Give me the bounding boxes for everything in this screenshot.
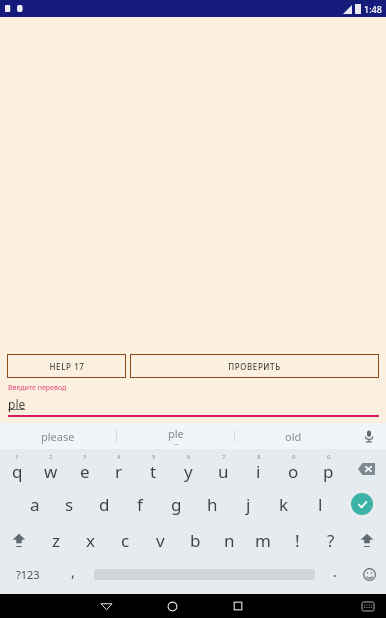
button[interactable]: 6: [171, 452, 206, 486]
button[interactable]: Emoji: [352, 558, 386, 590]
staticText: 0: [327, 453, 331, 461]
staticText: r: [115, 460, 123, 483]
button[interactable]: 9: [276, 452, 311, 486]
button[interactable]: ПРОВЕРИТЬ: [130, 354, 379, 378]
staticText: b: [190, 529, 201, 552]
button[interactable]: 4: [102, 452, 136, 486]
button[interactable]: .: [318, 558, 352, 590]
staticText: 6: [187, 453, 191, 461]
staticText: p: [323, 460, 334, 483]
button[interactable]: g: [158, 486, 194, 522]
staticText: j: [246, 493, 251, 516]
staticText: ple: [168, 426, 184, 441]
staticText: o: [288, 460, 299, 483]
staticText: 7: [222, 453, 226, 461]
button[interactable]: Home: [139, 594, 205, 618]
staticText: c: [121, 529, 130, 552]
button[interactable]: Back: [73, 594, 139, 618]
button[interactable]: ?123: [0, 558, 56, 590]
staticText: m: [255, 529, 271, 552]
button[interactable]: 3: [68, 452, 102, 486]
staticText: x: [86, 529, 95, 552]
button[interactable]: Voice input: [352, 423, 386, 449]
button[interactable]: n: [212, 522, 246, 558]
staticText: v: [156, 529, 165, 552]
button[interactable]: Shift: [348, 522, 386, 558]
staticText: e: [80, 460, 90, 483]
button[interactable]: !: [280, 522, 314, 558]
button[interactable]: ?: [314, 522, 348, 558]
button[interactable]: Switch keyboard: [350, 594, 386, 618]
staticText: 3: [83, 453, 87, 461]
button[interactable]: j: [230, 486, 266, 522]
staticText: k: [279, 493, 289, 516]
staticText: ple: [8, 396, 26, 412]
staticText: please: [41, 429, 75, 444]
button[interactable]: please: [0, 423, 116, 449]
staticText: 2: [49, 453, 53, 461]
staticText: 8: [257, 453, 261, 461]
staticText: 4: [117, 453, 121, 461]
staticText: •••: [174, 442, 179, 447]
staticText: HELP 17: [49, 361, 85, 372]
staticText: 1: [15, 453, 19, 461]
button[interactable]: 1: [0, 452, 34, 486]
button[interactable]: Space: [90, 558, 318, 590]
staticText: s: [65, 493, 74, 516]
button[interactable]: Backspace: [346, 452, 386, 486]
staticText: ,: [71, 562, 75, 581]
button[interactable]: HELP 17: [7, 354, 126, 378]
staticText: w: [44, 460, 58, 483]
button[interactable]: l: [302, 486, 338, 522]
staticText: Введите перевод: [8, 383, 67, 393]
staticText: .: [333, 562, 337, 581]
staticText: y: [184, 460, 193, 483]
button[interactable]: b: [178, 522, 212, 558]
button[interactable]: old: [235, 423, 352, 449]
staticText: old: [285, 429, 302, 444]
staticText: i: [256, 460, 261, 483]
staticText: h: [207, 493, 218, 516]
staticText: g: [171, 493, 182, 516]
button[interactable]: 0: [311, 452, 346, 486]
staticText: 5: [152, 453, 156, 461]
button[interactable]: v: [143, 522, 178, 558]
button[interactable]: k: [266, 486, 302, 522]
button[interactable]: Enter: [338, 486, 386, 522]
staticText: ПРОВЕРИТЬ: [228, 361, 281, 372]
button[interactable]: Recents: [205, 594, 271, 618]
button[interactable]: x: [73, 522, 108, 558]
staticText: ?: [327, 529, 335, 552]
staticText: !: [295, 529, 300, 552]
button[interactable]: 5: [136, 452, 171, 486]
staticText: q: [12, 460, 23, 483]
staticText: ?123: [16, 567, 40, 582]
staticText: z: [52, 529, 60, 552]
staticText: u: [218, 460, 229, 483]
button[interactable]: 8: [241, 452, 276, 486]
button[interactable]: a: [17, 486, 52, 522]
staticText: 1:48: [364, 3, 382, 15]
button[interactable]: f: [122, 486, 158, 522]
staticText: 9: [292, 453, 296, 461]
staticText: t: [150, 460, 157, 483]
button[interactable]: Shift: [0, 522, 38, 558]
staticText: d: [99, 493, 110, 516]
button[interactable]: ple: [117, 423, 234, 449]
staticText: a: [30, 493, 40, 516]
button[interactable]: z: [38, 522, 73, 558]
staticText: n: [224, 529, 235, 552]
button[interactable]: c: [108, 522, 143, 558]
button[interactable]: m: [246, 522, 280, 558]
button[interactable]: h: [194, 486, 230, 522]
button[interactable]: d: [87, 486, 122, 522]
staticText: l: [318, 493, 323, 516]
button[interactable]: 2: [34, 452, 68, 486]
staticText: f: [137, 493, 143, 516]
button[interactable]: 7: [206, 452, 241, 486]
button[interactable]: s: [52, 486, 87, 522]
button[interactable]: ,: [56, 558, 90, 590]
